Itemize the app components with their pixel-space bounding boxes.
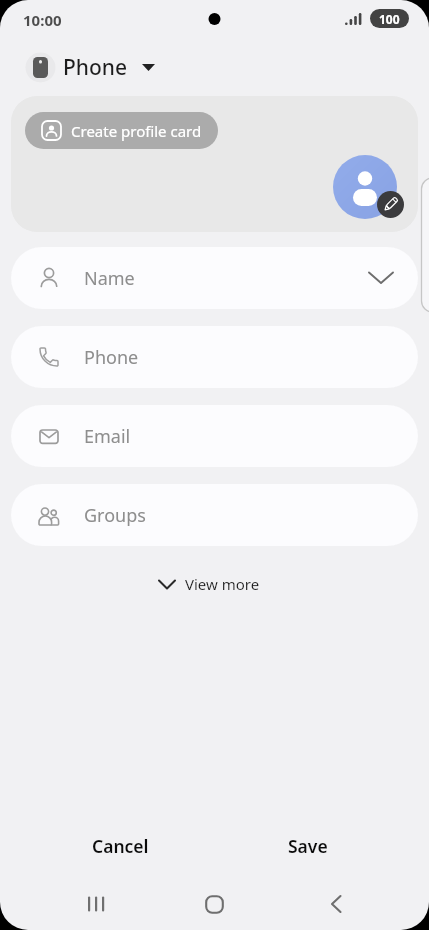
- staticText: Create profile card: [71, 121, 202, 141]
- button[interactable]: [72, 878, 120, 930]
- staticText: Name: [84, 266, 135, 291]
- staticText: Email: [84, 424, 131, 449]
- button[interactable]: [190, 878, 238, 930]
- staticText: 100: [379, 11, 400, 27]
- button[interactable]: Name: [11, 247, 418, 309]
- staticText: Phone: [84, 345, 139, 370]
- staticText: Cancel: [92, 834, 149, 858]
- button[interactable]: [312, 878, 360, 930]
- button[interactable]: Phone: [30, 52, 155, 82]
- button[interactable]: [333, 155, 397, 219]
- button[interactable]: [377, 191, 404, 218]
- staticText: Save: [288, 834, 328, 858]
- button[interactable]: Phone: [11, 326, 418, 388]
- staticText: View more: [185, 574, 260, 594]
- button[interactable]: Email: [11, 405, 418, 467]
- staticText: Groups: [84, 503, 146, 528]
- staticText: 10:00: [23, 10, 62, 30]
- button[interactable]: View more: [0, 570, 423, 598]
- button[interactable]: Groups: [11, 484, 418, 546]
- button[interactable]: Save: [248, 820, 368, 872]
- staticText: Phone: [63, 53, 128, 82]
- button[interactable]: Create profile card: [25, 112, 218, 149]
- button[interactable]: Cancel: [60, 820, 180, 872]
